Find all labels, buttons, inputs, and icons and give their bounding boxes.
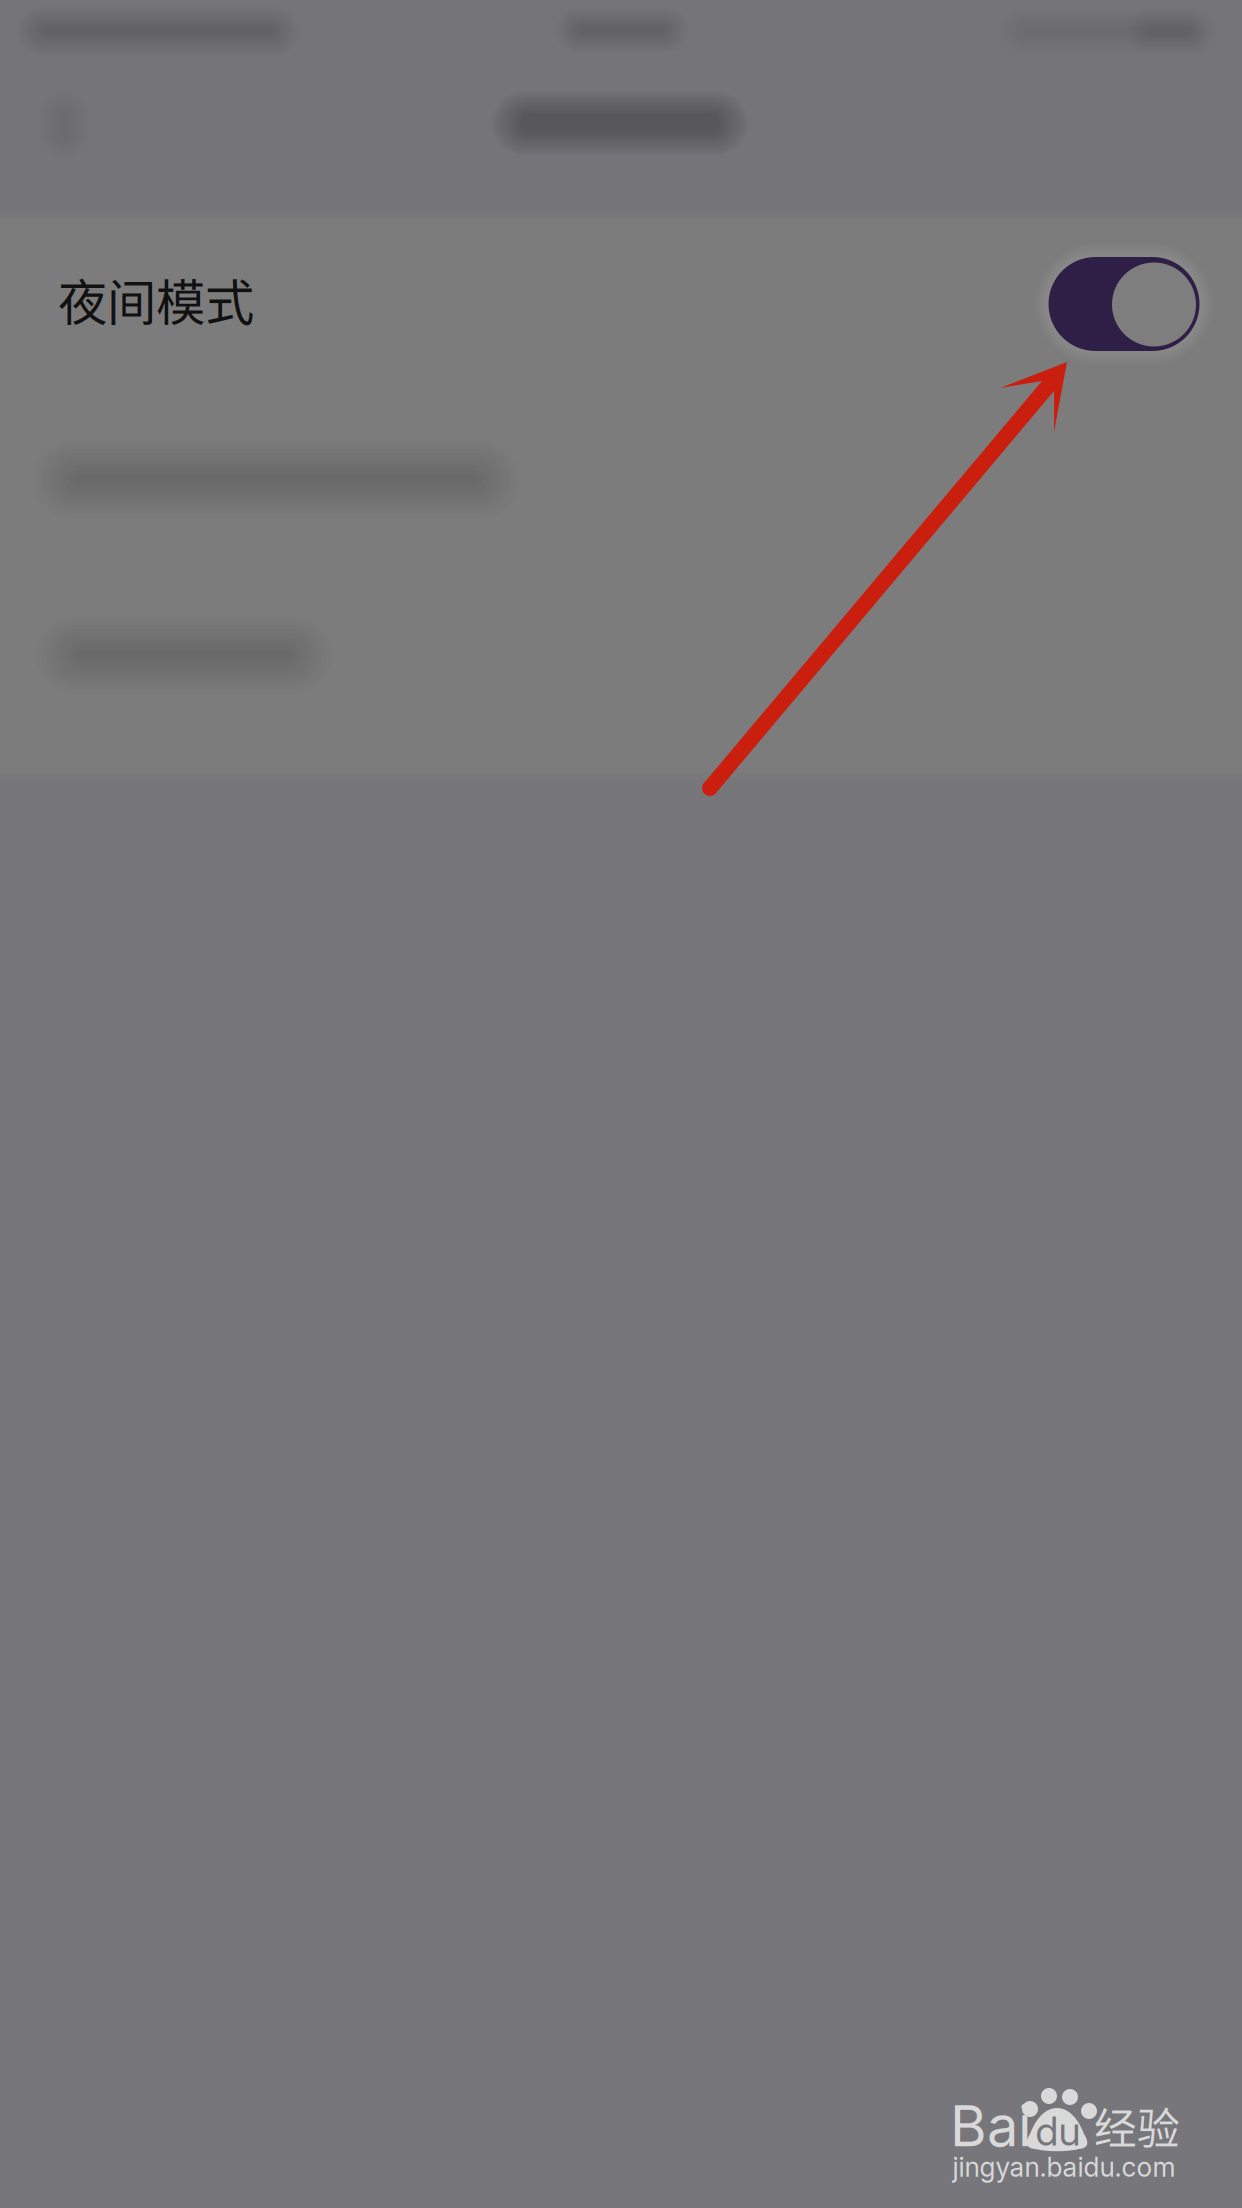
staticText: jingyan.baidu.com [952, 2151, 1175, 2183]
staticText: du [1035, 2107, 1080, 2155]
staticText: 经验 [1094, 2095, 1180, 2157]
staticText: 夜间模式 [58, 263, 254, 335]
staticText: Bai [950, 2092, 1032, 2160]
button[interactable]: 夜间模式开关 [1035, 243, 1213, 364]
